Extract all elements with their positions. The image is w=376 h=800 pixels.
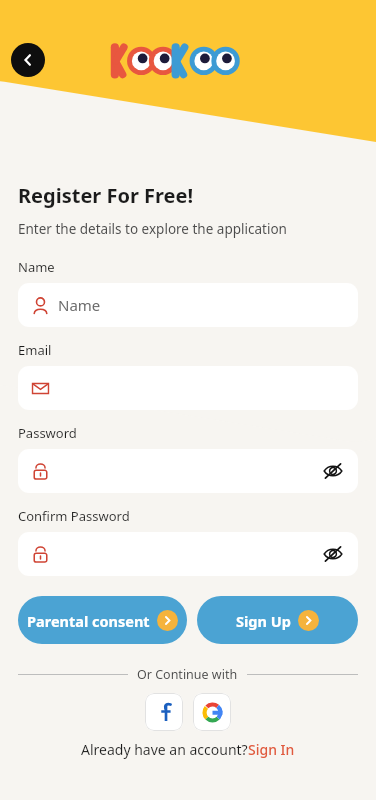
staticText: Parental consent	[27, 611, 150, 631]
button[interactable]: Sign up with Google	[193, 693, 231, 731]
staticText: Sign Up	[236, 611, 291, 631]
staticText: Name	[18, 258, 55, 276]
button[interactable]: Sign Up	[197, 596, 358, 644]
staticText: Name	[58, 295, 101, 315]
staticText: Sign In	[248, 740, 295, 759]
staticText: Register For Free!	[18, 182, 194, 209]
staticText: Or Continue with	[137, 666, 238, 683]
button[interactable]: Confirm password	[18, 532, 358, 576]
staticText: Enter the details to explore the applica…	[18, 220, 287, 238]
staticText: Confirm Password	[18, 507, 130, 525]
button[interactable]: Email	[18, 366, 358, 410]
button[interactable]: Toggle password visibility	[321, 459, 345, 483]
button[interactable]: Password	[18, 449, 358, 493]
button[interactable]: Sign In	[248, 740, 295, 759]
staticText: Already have an account?	[81, 740, 248, 759]
button[interactable]: Name	[18, 283, 358, 327]
button[interactable]: Parental consent	[18, 596, 187, 644]
button[interactable]: Toggle password visibility	[321, 542, 345, 566]
staticText: Password	[18, 424, 77, 442]
staticText: Email	[18, 341, 52, 359]
button[interactable]: Sign up with Facebook	[145, 693, 183, 731]
button[interactable]: Back	[11, 43, 45, 77]
